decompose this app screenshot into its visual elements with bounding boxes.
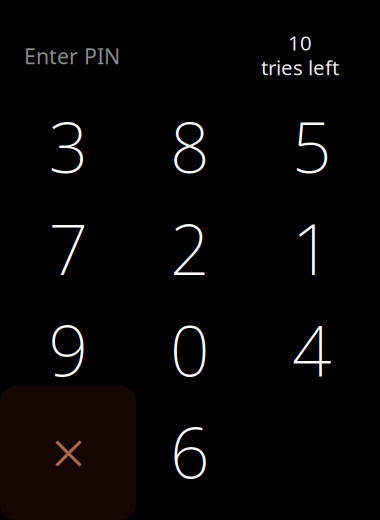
staticText: 2 [170,202,210,294]
staticText: Enter PIN [24,41,120,71]
staticText: 8 [170,100,210,192]
button[interactable]: 0 [129,298,251,400]
button[interactable]: 1 [251,197,373,299]
staticText: 5 [292,100,332,192]
button[interactable]: Delete [0,386,136,520]
button[interactable]: 4 [251,298,373,400]
staticText: 3 [48,100,88,192]
staticText: 0 [170,303,210,396]
button[interactable]: 7 [7,197,129,299]
staticText: tries left [261,53,339,81]
staticText: 6 [170,405,210,498]
staticText: 7 [48,202,88,294]
button[interactable]: 2 [129,197,251,299]
button[interactable]: 3 [7,95,129,197]
staticText: 4 [292,303,332,396]
staticText: 9 [48,303,88,396]
staticText: 10 [288,29,312,56]
button[interactable]: 8 [129,95,251,197]
button[interactable]: 5 [251,95,373,197]
staticText: 1 [292,202,332,294]
button[interactable]: 6 [129,400,251,502]
button[interactable]: 9 [7,298,129,400]
button[interactable]: Enter PIN [24,43,164,69]
